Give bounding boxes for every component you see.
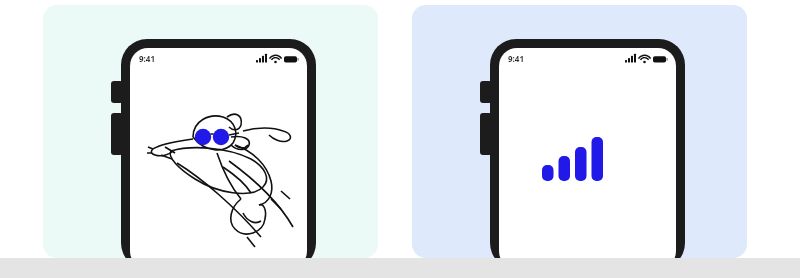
button[interactable]: Dog illustration card	[43, 5, 378, 258]
staticText: 9:41	[139, 53, 155, 64]
staticText: 9:41	[508, 53, 524, 64]
button[interactable]: Bar chart card	[412, 5, 747, 258]
